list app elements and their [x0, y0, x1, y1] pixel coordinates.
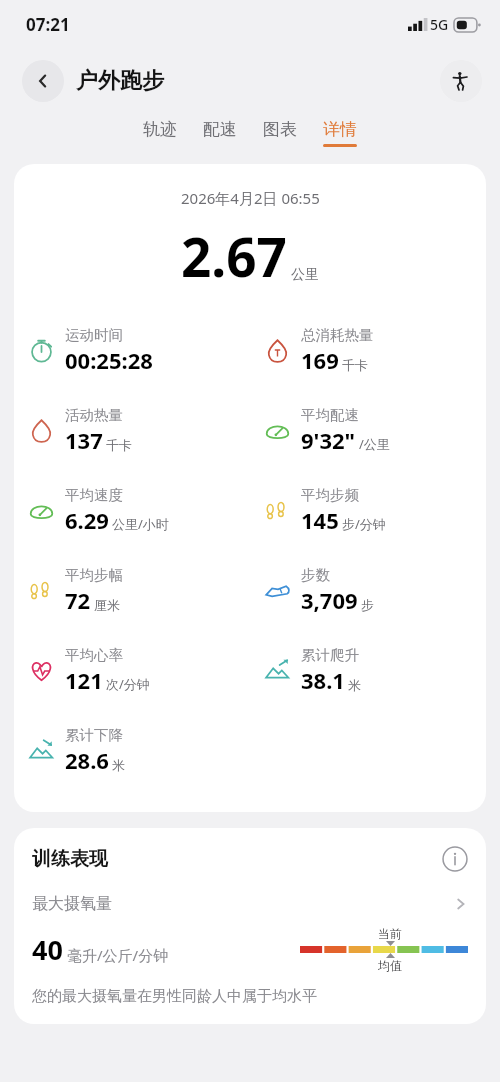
- button[interactable]: 活动热量: [14, 406, 250, 455]
- button[interactable]: 详情: [310, 114, 370, 152]
- staticText: 9'32": [301, 425, 356, 455]
- staticText: 当前: [378, 926, 402, 941]
- staticText: 07:21: [26, 13, 70, 36]
- button[interactable]: 累计下降: [14, 726, 250, 775]
- staticText: 38.1: [301, 665, 345, 695]
- staticText: 总消耗热量: [301, 326, 374, 344]
- staticText: /公里: [359, 435, 390, 453]
- staticText: 169: [301, 345, 339, 375]
- staticText: 厘米: [94, 597, 120, 613]
- staticText: 公里/小时: [112, 515, 169, 533]
- button[interactable]: 平均心率: [14, 646, 250, 695]
- staticText: 千卡: [342, 357, 368, 373]
- staticText: 训练表现: [32, 847, 108, 871]
- staticText: 次/分钟: [106, 675, 150, 693]
- staticText: 121: [65, 665, 103, 695]
- button[interactable]: 总消耗热量: [250, 326, 486, 375]
- button[interactable]: Back: [22, 60, 64, 102]
- staticText: 平均配速: [301, 406, 359, 424]
- staticText: 平均心率: [65, 646, 123, 664]
- button[interactable]: 运动时间: [14, 326, 250, 375]
- button[interactable]: 最大摄氧量: [14, 894, 486, 914]
- staticText: 您的最大摄氧量在男性同龄人中属于均水平: [32, 987, 317, 1006]
- staticText: 5G: [430, 15, 449, 34]
- button[interactable]: Info: [442, 846, 468, 872]
- staticText: 千卡: [106, 437, 132, 453]
- button[interactable]: 图表: [250, 114, 310, 152]
- staticText: 公里: [291, 266, 319, 284]
- staticText: 步数: [301, 566, 330, 584]
- button[interactable]: 平均步幅: [14, 566, 250, 615]
- staticText: 累计下降: [65, 726, 123, 744]
- staticText: 最大摄氧量: [32, 894, 112, 914]
- staticText: 活动热量: [65, 406, 123, 424]
- staticText: 平均速度: [65, 486, 123, 504]
- staticText: 00:25:28: [65, 345, 153, 375]
- staticText: 累计爬升: [301, 646, 359, 664]
- staticText: 2.67: [181, 220, 287, 292]
- staticText: 2026年4月2日 06:55: [181, 188, 320, 208]
- button[interactable]: 平均步频: [250, 486, 486, 535]
- button[interactable]: 配速: [190, 114, 250, 152]
- staticText: 72: [65, 585, 91, 615]
- staticText: 137: [65, 425, 103, 455]
- staticText: 145: [301, 505, 339, 535]
- staticText: 轨迹: [143, 119, 177, 140]
- button[interactable]: 平均配速: [250, 406, 486, 455]
- staticText: 图表: [263, 119, 297, 140]
- staticText: 步/分钟: [342, 515, 386, 533]
- staticText: 均值: [378, 958, 402, 973]
- button[interactable]: 轨迹: [130, 114, 190, 152]
- staticText: 米: [348, 677, 361, 693]
- button[interactable]: 累计爬升: [250, 646, 486, 695]
- staticText: 毫升/公斤/分钟: [67, 945, 169, 965]
- staticText: 40: [32, 931, 63, 968]
- staticText: 米: [112, 757, 125, 773]
- button[interactable]: 平均速度: [14, 486, 250, 535]
- staticText: 步: [361, 597, 374, 613]
- staticText: 运动时间: [65, 326, 123, 344]
- staticText: 6.29: [65, 505, 109, 535]
- staticText: 28.6: [65, 745, 109, 775]
- staticText: 平均步幅: [65, 566, 123, 584]
- staticText: 户外跑步: [76, 67, 164, 95]
- staticText: 平均步频: [301, 486, 359, 504]
- button[interactable]: Workout type: [440, 60, 482, 102]
- staticText: 详情: [323, 119, 357, 140]
- staticText: 配速: [203, 119, 237, 140]
- button[interactable]: 步数: [250, 566, 486, 615]
- staticText: 3,709: [301, 585, 358, 615]
